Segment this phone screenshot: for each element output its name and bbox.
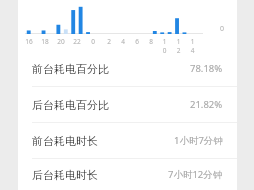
staticText: 8 bbox=[149, 37, 153, 46]
staticText: 2 bbox=[107, 37, 111, 46]
staticText: 1小时7分钟 bbox=[174, 134, 223, 147]
staticText: 前台耗电百分比 bbox=[32, 62, 109, 76]
staticText: 21.82% bbox=[190, 98, 223, 111]
staticText: 20 bbox=[57, 37, 65, 46]
staticText: 0 bbox=[91, 37, 95, 46]
staticText: 6 bbox=[135, 37, 139, 46]
staticText: 后台耗电百分比 bbox=[32, 98, 109, 112]
staticText: 12 bbox=[175, 37, 182, 55]
button[interactable]: 后台耗电百分比 bbox=[18, 87, 237, 122]
staticText: 16 bbox=[25, 37, 33, 46]
staticText: 18 bbox=[41, 37, 49, 46]
staticText: 前台耗电时长 bbox=[32, 134, 98, 148]
staticText: 7小时12分钟 bbox=[168, 168, 223, 181]
staticText: 后台耗电时长 bbox=[32, 168, 98, 182]
button[interactable]: 前台耗电百分比 bbox=[18, 51, 237, 86]
staticText: 22 bbox=[73, 37, 81, 46]
staticText: 4 bbox=[121, 37, 125, 46]
staticText: 14 bbox=[189, 37, 196, 55]
staticText: 78.18% bbox=[190, 62, 223, 75]
staticText: 0 bbox=[220, 24, 225, 34]
staticText: 10 bbox=[161, 37, 168, 55]
button[interactable]: 后台耗电时长 bbox=[18, 159, 237, 190]
button[interactable]: 前台耗电时长 bbox=[18, 123, 237, 158]
